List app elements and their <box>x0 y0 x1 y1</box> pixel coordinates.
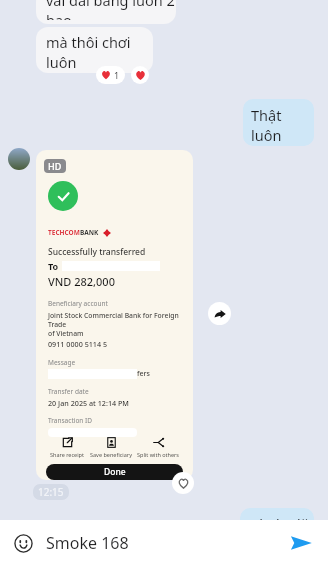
staticText: 20 Jan 2025 at 12:14 PM <box>48 398 129 408</box>
staticText: 1 <box>114 69 120 81</box>
staticText: Done <box>104 466 126 478</box>
staticText: HD <box>48 160 62 172</box>
staticText: VND 282,000 <box>48 274 115 289</box>
staticText: Beneficiary account <box>48 299 108 308</box>
staticText: Transfer date <box>48 387 89 396</box>
staticText: Ok đã đặt <box>248 514 314 534</box>
button[interactable]: React with heart <box>172 472 194 494</box>
staticText: TECHCOM <box>48 228 80 237</box>
staticText: Successfully transferred <box>48 246 146 258</box>
button[interactable]: Smoke 168 <box>46 532 286 554</box>
button[interactable]: Thật luôn <box>243 99 314 146</box>
button[interactable]: Done <box>46 464 183 480</box>
button[interactable]: Send <box>286 528 316 558</box>
staticText: To <box>48 260 59 272</box>
button[interactable]: Save beneficiary <box>88 437 134 458</box>
staticText: Save beneficiary <box>90 451 132 458</box>
button[interactable] <box>8 148 30 170</box>
button[interactable]: Forward <box>208 302 231 325</box>
staticText: Message <box>48 358 76 367</box>
button[interactable]: Emoji <box>12 532 34 554</box>
staticText: vãi đái bằng luôn 2 bao <box>46 0 176 20</box>
staticText: of Vietnam <box>48 329 84 338</box>
staticText: Joint Stock Commercial Bank for Foreign … <box>48 311 193 329</box>
staticText: mà thôi chơi luôn <box>46 32 153 72</box>
staticText: Split with others <box>137 451 179 458</box>
button[interactable]: vãi đái bằng luôn 2 bao <box>36 0 176 24</box>
button[interactable]: Split with others <box>135 437 181 458</box>
button[interactable] <box>131 66 149 84</box>
staticText: Thật luôn <box>251 105 314 145</box>
staticText: Transaction ID <box>48 416 92 425</box>
staticText: 12:15 <box>38 485 64 499</box>
staticText: 0911 0000 5114 5 <box>48 339 108 349</box>
staticText: Smoke 168 <box>46 532 129 554</box>
button[interactable]: 1 <box>101 66 120 84</box>
button[interactable]: mà thôi chơi luôn <box>36 27 153 73</box>
staticText: fers <box>137 369 150 379</box>
staticText: BANK <box>80 228 99 237</box>
staticText: Share receipt <box>50 451 84 458</box>
button[interactable]: Ok đã đặt <box>240 508 314 550</box>
button[interactable]: Share receipt <box>48 437 86 458</box>
button[interactable]: HD <box>36 150 193 480</box>
